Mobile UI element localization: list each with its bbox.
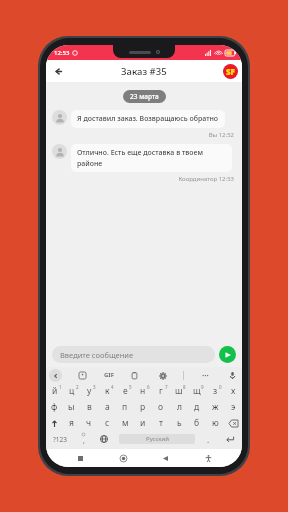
button[interactable]: а <box>98 399 116 415</box>
staticText: ?123 <box>53 435 67 444</box>
staticText: у <box>87 385 92 397</box>
staticText: 4 <box>111 384 114 390</box>
button[interactable]: Change language <box>93 431 115 447</box>
button[interactable]: ю <box>206 415 224 431</box>
button[interactable]: ?123 <box>46 431 74 447</box>
button[interactable]: Home <box>115 450 131 466</box>
staticText: и <box>140 417 146 429</box>
staticText: ш <box>175 385 183 397</box>
staticText: 5 <box>129 384 132 390</box>
staticText: э <box>231 401 236 413</box>
staticText: Отлично. Есть еще доставка в твоем район… <box>77 148 226 168</box>
button[interactable]: Clipboard <box>128 369 141 382</box>
staticText: Введите сообщение <box>60 350 134 360</box>
staticText: ч <box>86 417 92 429</box>
staticText: н <box>140 385 146 397</box>
button[interactable]: у <box>80 383 98 399</box>
button[interactable]: ф <box>46 399 63 415</box>
button[interactable]: Русский <box>119 434 195 444</box>
button[interactable]: й <box>46 383 63 399</box>
staticText: ••• <box>202 372 209 380</box>
button[interactable]: в <box>80 399 98 415</box>
button[interactable]: Enter <box>218 431 242 447</box>
button[interactable]: х <box>224 383 242 399</box>
staticText: . <box>207 434 210 445</box>
staticText: 12:53 <box>54 49 70 57</box>
button[interactable]: ш <box>170 383 188 399</box>
button[interactable]: Backspace <box>224 415 242 431</box>
button[interactable]: Send <box>219 346 236 363</box>
staticText: 3 <box>93 384 96 390</box>
button[interactable]: Comma <box>74 431 93 447</box>
button[interactable]: ы <box>63 399 80 415</box>
staticText: е <box>123 385 128 397</box>
button[interactable]: Settings <box>156 369 169 382</box>
staticText: Координатор 12:53 <box>46 175 234 183</box>
staticText: к <box>105 385 110 397</box>
button[interactable]: Expand <box>49 369 62 382</box>
button[interactable]: ь <box>170 415 188 431</box>
staticText: 1 <box>59 384 62 390</box>
staticText: Вы 12:52 <box>46 131 234 139</box>
staticText: т <box>159 417 163 429</box>
button[interactable]: Stickers <box>76 369 89 382</box>
staticText: б <box>194 417 200 429</box>
staticText: GIF <box>104 371 114 379</box>
button[interactable]: и <box>134 415 152 431</box>
button[interactable]: о <box>152 399 170 415</box>
staticText: р <box>140 401 146 413</box>
button[interactable]: е <box>116 383 134 399</box>
staticText: м <box>122 417 129 429</box>
staticText: , <box>83 436 85 446</box>
button[interactable]: Recents <box>72 450 88 466</box>
staticText: Русский <box>146 435 169 443</box>
staticText: SF <box>226 66 235 77</box>
staticText: 6 <box>147 384 150 390</box>
button[interactable]: з <box>206 383 224 399</box>
button[interactable]: н <box>134 383 152 399</box>
button[interactable]: щ <box>188 383 206 399</box>
button[interactable]: More <box>199 369 212 382</box>
button[interactable]: б <box>188 415 206 431</box>
staticText: ф <box>51 401 58 413</box>
button[interactable]: ц <box>63 383 80 399</box>
staticText: я <box>69 417 74 429</box>
button[interactable]: э <box>224 399 242 415</box>
button[interactable]: Отлично. Есть еще доставка в твоем район… <box>71 144 232 172</box>
button[interactable]: Accessibility <box>200 450 216 466</box>
button[interactable]: р <box>134 399 152 415</box>
staticText: 2 <box>76 384 79 390</box>
button[interactable]: Voice input <box>226 369 239 382</box>
staticText: с <box>105 417 110 429</box>
staticText: о <box>158 401 164 413</box>
staticText: г <box>159 385 163 397</box>
staticText: ц <box>69 385 75 397</box>
button[interactable]: г <box>152 383 170 399</box>
button[interactable]: л <box>170 399 188 415</box>
button[interactable]: ж <box>206 399 224 415</box>
button[interactable]: Я доставил заказ. Возвращаюсь обратно <box>71 110 225 128</box>
button[interactable]: п <box>116 399 134 415</box>
button[interactable]: ч <box>80 415 98 431</box>
button[interactable]: Shift <box>46 415 63 431</box>
staticText: з <box>213 385 218 397</box>
button[interactable]: Back <box>49 62 67 80</box>
staticText: й <box>52 385 58 397</box>
button[interactable]: с <box>98 415 116 431</box>
button[interactable]: Period <box>199 431 218 447</box>
staticText: 23 марта <box>130 92 159 101</box>
button[interactable]: SF logo <box>223 64 238 79</box>
staticText: п <box>122 401 128 413</box>
button[interactable]: GIF <box>104 371 114 379</box>
staticText: Я доставил заказ. Возвращаюсь обратно <box>77 114 219 124</box>
button[interactable]: т <box>152 415 170 431</box>
staticText: в <box>87 401 92 413</box>
button[interactable]: д <box>188 399 206 415</box>
button[interactable]: к <box>98 383 116 399</box>
button[interactable]: м <box>116 415 134 431</box>
staticText: Заказ #35 <box>121 65 167 78</box>
button[interactable]: я <box>63 415 80 431</box>
button[interactable]: Введите сообщение <box>52 346 215 363</box>
staticText: х <box>231 385 236 397</box>
button[interactable]: Back <box>157 450 173 466</box>
